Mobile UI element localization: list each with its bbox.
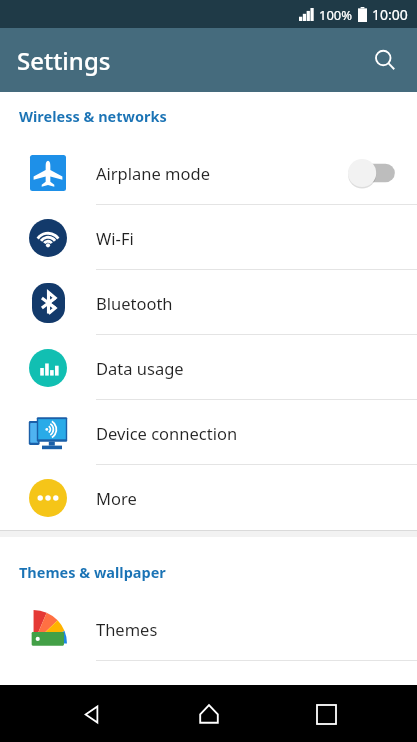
button[interactable]: Device connection bbox=[0, 400, 417, 465]
button[interactable]: Data usage bbox=[0, 335, 417, 400]
button[interactable]: Themes bbox=[0, 596, 417, 661]
staticText: Airplane mode bbox=[96, 162, 347, 184]
button[interactable]: Airplane mode bbox=[0, 140, 417, 205]
staticText: 10:00 bbox=[372, 5, 408, 24]
staticText: More bbox=[96, 487, 417, 509]
staticText: Bluetooth bbox=[96, 292, 417, 314]
staticText: Themes bbox=[96, 618, 417, 640]
button[interactable]: Recent apps bbox=[300, 688, 352, 740]
staticText: Wi-Fi bbox=[96, 227, 417, 249]
button[interactable]: Bluetooth bbox=[0, 270, 417, 335]
button[interactable]: Wi-Fi bbox=[0, 205, 417, 270]
staticText: Themes & wallpaper bbox=[19, 562, 166, 582]
button[interactable]: Home bbox=[183, 688, 235, 740]
button[interactable]: Search bbox=[361, 36, 409, 84]
staticText: Device connection bbox=[96, 422, 417, 444]
staticText: Data usage bbox=[96, 357, 417, 379]
staticText: Wireless & networks bbox=[19, 106, 167, 126]
button[interactable]: Airplane mode toggle bbox=[347, 158, 399, 188]
button[interactable]: More bbox=[0, 465, 417, 530]
staticText: Settings bbox=[17, 44, 111, 77]
button[interactable]: Back bbox=[65, 688, 117, 740]
staticText: 100% bbox=[319, 6, 353, 24]
